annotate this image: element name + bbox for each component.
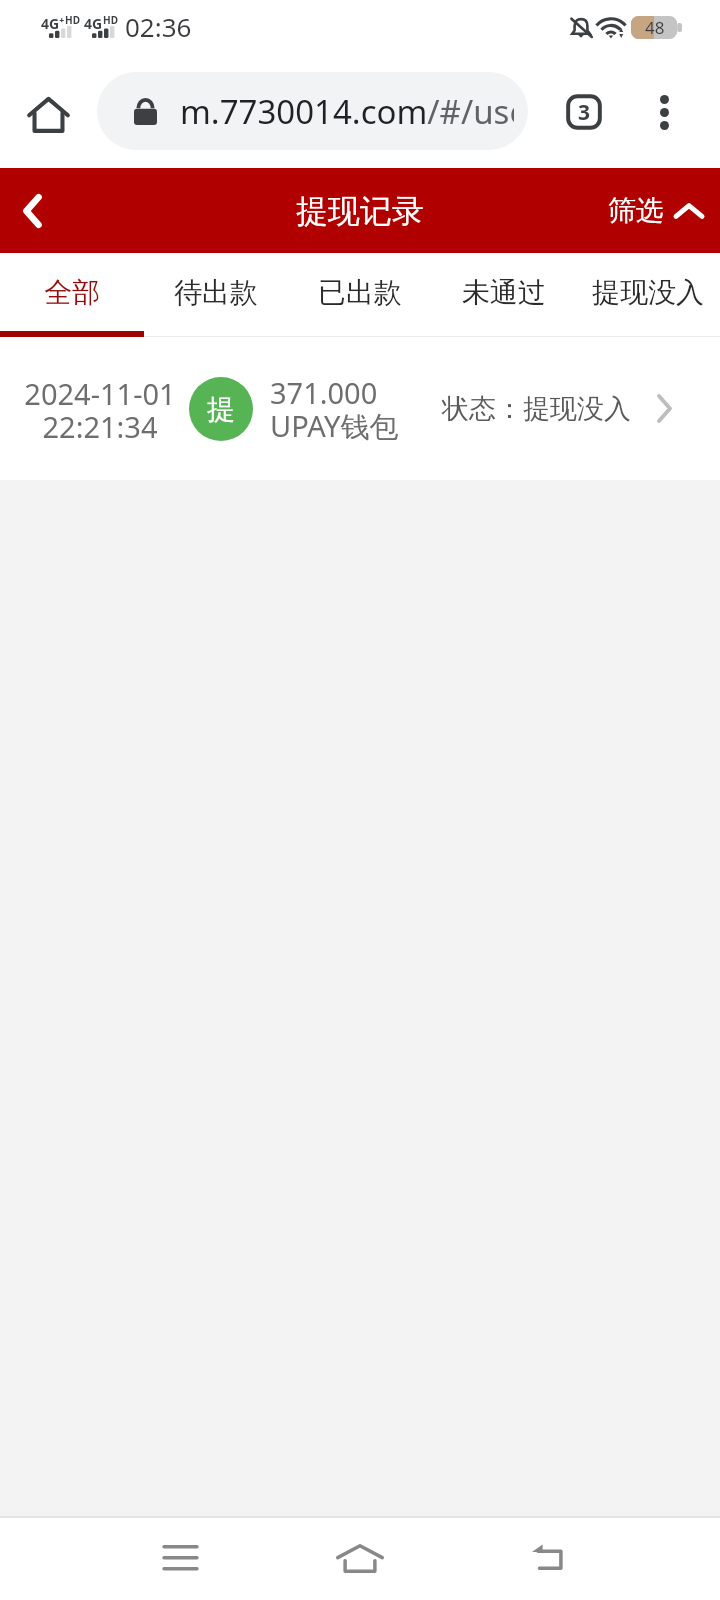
staticText: HD	[103, 13, 118, 27]
button[interactable]: Home	[320, 1523, 400, 1593]
button[interactable]: Tabs	[550, 78, 618, 146]
staticText: 已出款	[318, 275, 402, 310]
button[interactable]: Back	[509, 1523, 589, 1593]
button[interactable]: 提现没入	[576, 253, 720, 331]
button[interactable]: 2024-11-01 22:21:34	[0, 337, 720, 480]
staticText: 全部	[44, 275, 100, 310]
staticText: 2024-11-01 22:21:34	[24, 374, 176, 446]
staticText: 371.000 UPAY钱包	[270, 373, 399, 446]
button[interactable]: 未通过	[432, 253, 576, 331]
staticText: 02:36	[125, 9, 192, 44]
staticText: 4G	[84, 14, 103, 33]
staticText: 状态：提现没入	[442, 392, 631, 426]
button[interactable]: 筛选	[596, 181, 720, 240]
button[interactable]: More options	[634, 82, 694, 142]
button[interactable]: 已出款	[288, 253, 432, 331]
staticText: 4G⁺	[41, 14, 65, 33]
staticText: HD	[65, 13, 80, 27]
staticText: m.7730014.com/#/user	[180, 89, 514, 134]
staticText: 提	[207, 392, 235, 427]
staticText: 待出款	[174, 275, 258, 310]
button[interactable]: Recent apps	[140, 1523, 220, 1593]
staticText: 3	[578, 98, 591, 127]
staticText: 提现没入	[592, 275, 704, 310]
staticText: 提现记录	[296, 191, 424, 231]
button[interactable]: Back	[0, 179, 64, 243]
staticText: 48	[645, 16, 665, 39]
button[interactable]: Home	[16, 82, 80, 146]
staticText: 筛选	[608, 193, 664, 228]
button[interactable]: m.7730014.com/#/user	[97, 72, 528, 150]
button[interactable]: 全部	[0, 253, 144, 331]
button[interactable]: 待出款	[144, 253, 288, 331]
staticText: 未通过	[462, 275, 546, 310]
